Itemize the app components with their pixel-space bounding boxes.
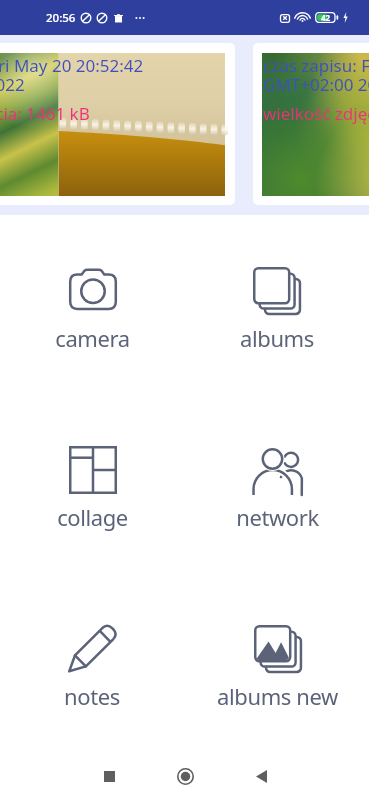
staticText: wielkość zdjęcia: 1461 kB bbox=[263, 102, 369, 125]
button[interactable]: Home bbox=[161, 752, 209, 800]
staticText: camera bbox=[55, 323, 130, 353]
staticText: collage bbox=[57, 502, 128, 532]
button[interactable]: Recent apps bbox=[85, 752, 133, 800]
button[interactable]: camera bbox=[12, 267, 172, 367]
staticText: wielkość zdjęcia: 1461 kB bbox=[0, 102, 90, 125]
staticText: 20:56 bbox=[46, 10, 76, 26]
staticText: czas zapisu: Fri May 20 20:52:42 GMT+02:… bbox=[0, 54, 147, 96]
staticText: czas zapisu: Fri May 20 20:52:42 GMT+02:… bbox=[263, 54, 369, 96]
button[interactable]: czas zapisu: Fri May 20 20:52:42 GMT+02:… bbox=[253, 43, 369, 205]
staticText: albums new bbox=[217, 681, 338, 711]
staticText: 42 bbox=[321, 12, 331, 23]
button[interactable]: albums bbox=[197, 267, 357, 367]
button[interactable]: network bbox=[197, 446, 357, 546]
button[interactable]: Back bbox=[237, 752, 285, 800]
staticText: albums bbox=[240, 323, 314, 353]
button[interactable]: albums new bbox=[197, 625, 357, 725]
button[interactable]: czas zapisu: Fri May 20 20:52:42 GMT+02:… bbox=[0, 43, 235, 205]
button[interactable]: collage bbox=[12, 446, 172, 546]
staticText: network bbox=[236, 502, 319, 532]
button[interactable]: notes bbox=[12, 625, 172, 725]
staticText: notes bbox=[64, 681, 120, 711]
